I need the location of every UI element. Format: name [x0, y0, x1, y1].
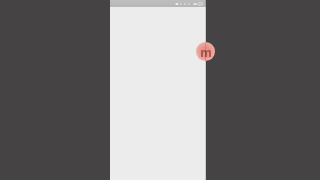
button[interactable]: Recording indicator	[196, 42, 215, 61]
staticText: m	[200, 44, 212, 60]
